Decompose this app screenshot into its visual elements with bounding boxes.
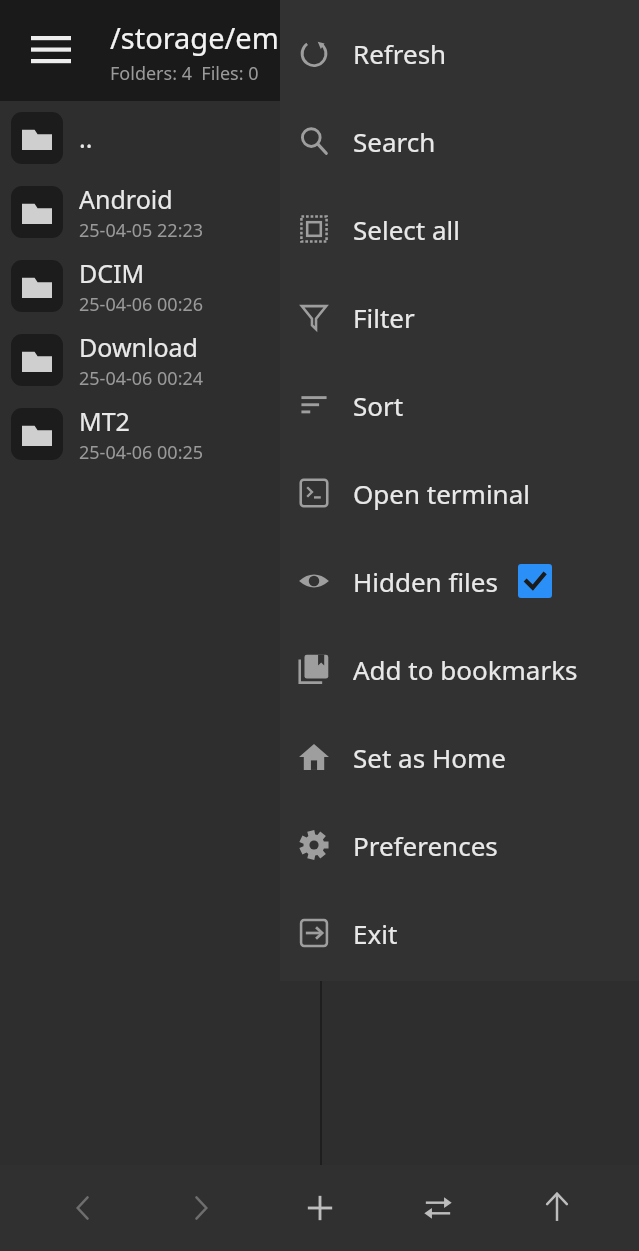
button[interactable]: Android: [0, 175, 639, 249]
staticText: 25-04-06 00:26: [79, 292, 204, 317]
button[interactable]: Download: [0, 323, 639, 397]
staticText: Refresh: [353, 36, 447, 71]
staticText: Folders: 4 Files: 0: [110, 61, 259, 86]
button[interactable]: Sort: [280, 361, 639, 449]
staticText: Android: [79, 182, 173, 216]
staticText: Search: [353, 124, 436, 159]
staticText: 25-04-06 00:24: [79, 366, 204, 391]
button[interactable]: Menu: [22, 25, 80, 75]
button[interactable]: Add to bookmarks: [280, 625, 639, 713]
button[interactable]: Exit: [280, 889, 639, 977]
staticText: Download: [79, 330, 198, 364]
staticText: ..: [79, 121, 93, 155]
staticText: Add to bookmarks: [353, 652, 578, 687]
staticText: Exit: [353, 916, 398, 951]
staticText: Preferences: [353, 828, 498, 863]
staticText: Open terminal: [353, 476, 530, 511]
staticText: MT2: [79, 404, 130, 438]
button[interactable]: ..: [0, 101, 639, 175]
staticText: DCIM: [79, 256, 145, 290]
staticText: Select all: [353, 212, 460, 247]
staticText: Filter: [353, 300, 415, 335]
button[interactable]: MT2: [0, 397, 639, 471]
button[interactable]: Set as Home: [280, 713, 639, 801]
button[interactable]: Back: [47, 1172, 119, 1244]
button[interactable]: Filter: [280, 273, 639, 361]
staticText: Hidden files: [353, 564, 498, 599]
button[interactable]: Preferences: [280, 801, 639, 889]
staticText: Sort: [353, 388, 404, 423]
button[interactable]: DCIM: [0, 249, 639, 323]
staticText: Set as Home: [353, 740, 506, 775]
staticText: /storage/emulated/0: [110, 18, 393, 57]
button[interactable]: Transfer: [402, 1172, 474, 1244]
button[interactable]: Up: [521, 1172, 593, 1244]
button[interactable]: Forward: [165, 1172, 237, 1244]
staticText: 25-04-06 00:25: [79, 440, 204, 465]
button[interactable]: Search: [280, 97, 639, 185]
button[interactable]: Hidden files: [280, 537, 639, 625]
button[interactable]: Add: [284, 1172, 356, 1244]
staticText: 25-04-05 22:23: [79, 218, 204, 243]
button[interactable]: Open terminal: [280, 449, 639, 537]
button[interactable]: Select all: [280, 185, 639, 273]
button[interactable]: Refresh: [280, 9, 639, 97]
